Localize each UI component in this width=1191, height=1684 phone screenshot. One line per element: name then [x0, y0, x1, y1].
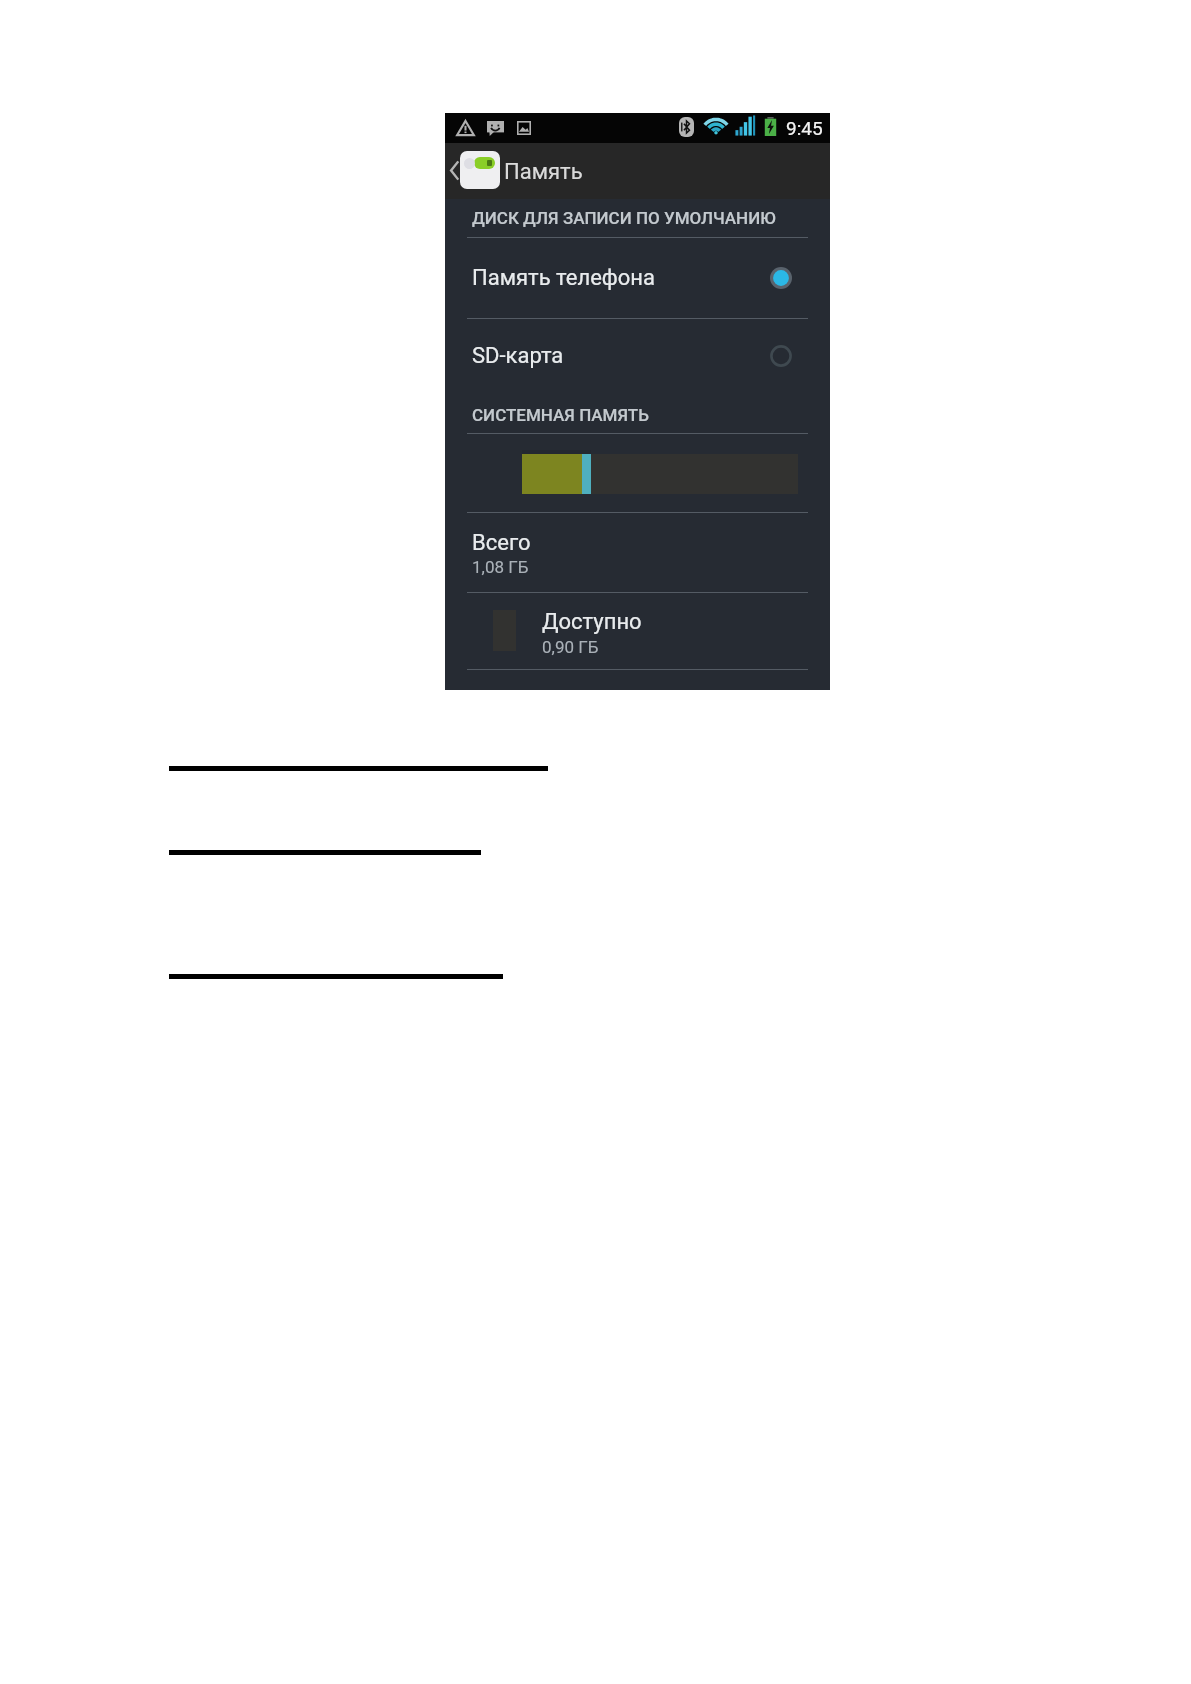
- staticText: Всего: [472, 530, 531, 556]
- staticText: Доступно: [542, 609, 642, 635]
- staticText: 0,90 ГБ: [542, 637, 599, 657]
- staticText: Память телефона: [472, 265, 655, 291]
- button[interactable]: Память телефона: [445, 237, 830, 318]
- staticText: СИСТЕМНАЯ ПАМЯТЬ: [472, 405, 649, 425]
- button[interactable]: Navigate up: [445, 143, 830, 199]
- staticText: SD-карта: [472, 343, 564, 369]
- staticText: 9:45: [786, 117, 823, 139]
- staticText: Память: [504, 159, 583, 185]
- button[interactable]: Navigate up: [448, 143, 502, 199]
- button[interactable]: SD-карта: [445, 318, 830, 394]
- button[interactable]: Всего: [445, 513, 830, 592]
- button[interactable]: Доступно: [445, 593, 830, 669]
- staticText: 1,08 ГБ: [472, 557, 529, 577]
- staticText: ДИСК ДЛЯ ЗАПИСИ ПО УМОЛЧАНИЮ: [472, 208, 776, 228]
